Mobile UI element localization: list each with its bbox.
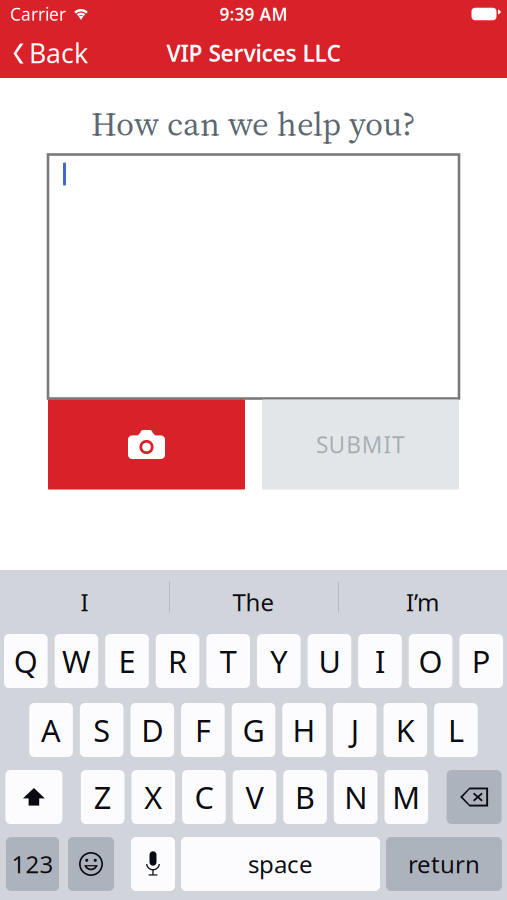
staticText: O [419,641,443,681]
staticText: M [392,777,420,817]
button[interactable]: SUBMIT [262,399,459,489]
button[interactable]: V [233,770,276,824]
button[interactable]: U [308,634,351,688]
button[interactable]: space [181,837,380,891]
staticText: space [248,848,313,880]
button[interactable]: 123 [6,837,59,891]
staticText: return [408,848,480,880]
button[interactable]: T [206,634,250,688]
staticText: Y [270,641,287,681]
staticText: Back [29,35,88,71]
button[interactable]: H [282,703,326,757]
staticText: S [93,710,110,750]
staticText: D [141,710,163,750]
button[interactable]: Y [257,634,301,688]
button[interactable]: I [358,634,402,688]
button[interactable]: A [29,703,73,757]
staticText: SUBMIT [316,429,405,460]
staticText: Carrier [10,2,66,25]
button[interactable]: C [182,770,226,824]
staticText: 9:39 AM [219,2,287,25]
staticText: I [375,641,385,681]
staticText: N [344,777,367,817]
button[interactable]: Delete [447,770,502,824]
staticText: U [318,641,340,681]
staticText: E [118,641,135,681]
button[interactable]: K [383,703,427,757]
staticText: T [220,641,237,681]
staticText: Z [94,777,112,817]
staticText: W [62,641,91,681]
staticText: A [41,710,61,750]
button[interactable]: X [131,770,175,824]
button[interactable]: E [105,634,149,688]
button[interactable]: F [181,703,225,757]
button[interactable]: O [409,634,452,688]
button[interactable]: R [156,634,199,688]
staticText: X [144,777,162,817]
button[interactable]: J [333,703,376,757]
button[interactable]: D [130,703,174,757]
staticText: I’m [406,586,439,618]
button[interactable]: Add photo [48,399,245,489]
button[interactable]: G [232,703,275,757]
button[interactable]: Emoji [68,837,114,891]
staticText: P [472,641,491,681]
button[interactable]: M [384,770,428,824]
button[interactable]: L [434,703,478,757]
staticText: B [295,777,315,817]
staticText: L [448,710,464,750]
button[interactable]: Dictation [131,837,175,891]
staticText: Q [14,641,38,681]
button[interactable]: N [334,770,377,824]
button[interactable]: W [55,634,98,688]
staticText: C [194,777,213,817]
button[interactable]: Q [4,634,48,688]
button[interactable]: Back [0,31,98,75]
staticText: K [396,710,415,750]
button[interactable]: return [386,837,502,891]
staticText: G [242,710,264,750]
button[interactable]: P [459,634,503,688]
button[interactable]: S [80,703,123,757]
staticText: R [168,641,187,681]
button[interactable]: Shift [5,770,62,824]
staticText: V [245,777,263,817]
staticText: The [232,586,274,618]
staticText: H [293,710,316,750]
staticText: F [195,710,211,750]
staticText: J [351,710,359,750]
button[interactable]: Z [81,770,124,824]
staticText: 123 [11,848,53,880]
staticText: How can we help you? [91,101,416,146]
staticText: I [80,586,88,618]
button[interactable]: B [283,770,327,824]
staticText: VIP Services LLC [166,38,340,68]
